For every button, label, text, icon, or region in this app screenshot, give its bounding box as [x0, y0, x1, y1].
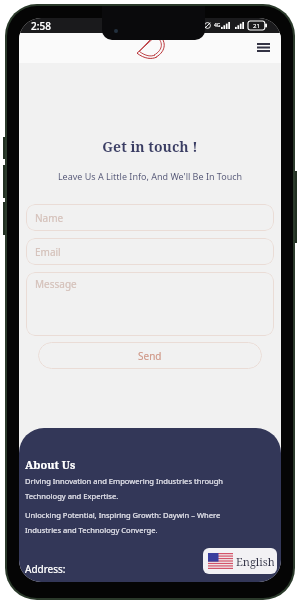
staticText: Get in touch ! [19, 137, 281, 156]
staticText: Unlocking Potential, Inspiring Growth: D… [25, 510, 235, 535]
button[interactable]: Send [38, 342, 262, 369]
staticText: Send [138, 349, 162, 363]
button[interactable]: Menu [253, 37, 273, 57]
button[interactable]: Name [26, 204, 274, 231]
staticText: English [236, 554, 274, 569]
staticText: About Us [25, 457, 76, 472]
button[interactable]: Email [26, 238, 274, 265]
button[interactable]: Message [26, 272, 274, 336]
button[interactable]: English [203, 548, 277, 574]
staticText: Message [35, 277, 77, 291]
staticText: Address: [25, 562, 66, 576]
staticText: 4G [214, 22, 221, 29]
staticText: Name [35, 211, 64, 225]
staticText: Driving Innovation and Empowering Indust… [25, 476, 235, 501]
staticText: Email [35, 245, 61, 259]
staticText: 2:58 [31, 19, 51, 33]
staticText: 21 [253, 22, 260, 30]
staticText: Leave Us A Little Info, And We'll Be In … [19, 170, 281, 182]
